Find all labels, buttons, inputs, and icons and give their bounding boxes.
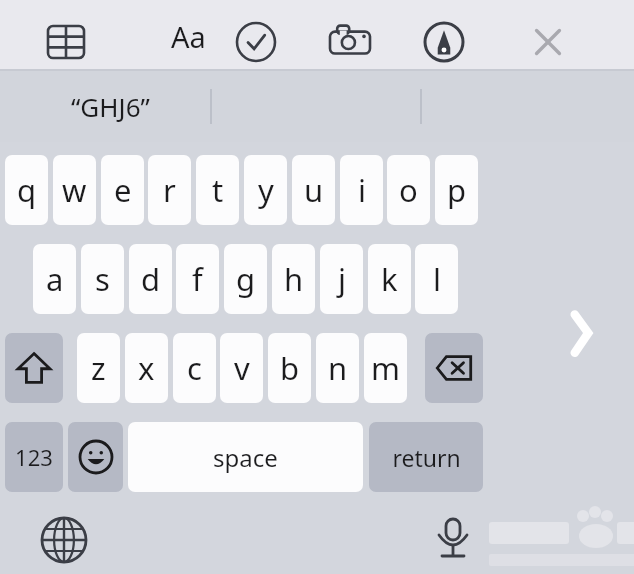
- button[interactable]: n: [316, 333, 359, 403]
- staticText: return: [392, 442, 461, 473]
- button[interactable]: q: [5, 155, 48, 225]
- button[interactable]: g: [224, 244, 267, 314]
- button[interactable]: u: [292, 155, 335, 225]
- button[interactable]: 123: [5, 422, 63, 492]
- button[interactable]: o: [387, 155, 430, 225]
- staticText: y: [258, 169, 274, 211]
- staticText: p: [447, 169, 467, 211]
- staticText: v: [234, 347, 250, 389]
- button[interactable]: t: [196, 155, 239, 225]
- button[interactable]: v: [220, 333, 263, 403]
- button[interactable]: d: [129, 244, 172, 314]
- button[interactable]: s: [81, 244, 124, 314]
- staticText: u: [304, 169, 324, 211]
- staticText: z: [91, 347, 106, 389]
- staticText: b: [280, 347, 300, 389]
- button[interactable]: Table: [40, 16, 92, 68]
- button[interactable]: b: [268, 333, 311, 403]
- button[interactable]: p: [435, 155, 478, 225]
- staticText: r: [163, 169, 176, 211]
- staticText: Aa: [171, 17, 206, 55]
- button[interactable]: Close: [522, 16, 574, 68]
- staticText: g: [236, 258, 256, 300]
- button[interactable]: f: [176, 244, 219, 314]
- staticText: t: [212, 169, 224, 211]
- button[interactable]: w: [53, 155, 96, 225]
- staticText: e: [114, 169, 132, 211]
- staticText: j: [338, 258, 346, 300]
- button[interactable]: Dictate: [428, 512, 478, 562]
- button[interactable]: return: [369, 422, 483, 492]
- button[interactable]: a: [33, 244, 76, 314]
- button[interactable]: Next: [556, 300, 608, 366]
- button[interactable]: y: [244, 155, 287, 225]
- button[interactable]: h: [272, 244, 315, 314]
- staticText: w: [62, 169, 87, 211]
- staticText: d: [141, 258, 161, 300]
- staticText: n: [328, 347, 348, 389]
- staticText: space: [213, 441, 278, 474]
- button[interactable]: Key: [68, 422, 123, 492]
- button[interactable]: Change keyboard language: [38, 514, 90, 566]
- button[interactable]: Aa: [158, 17, 218, 55]
- button[interactable]: Camera: [324, 16, 376, 68]
- button[interactable]: m: [364, 333, 407, 403]
- button[interactable]: x: [125, 333, 168, 403]
- staticText: i: [358, 169, 366, 211]
- button[interactable]: k: [368, 244, 411, 314]
- button[interactable]: c: [173, 333, 216, 403]
- staticText: k: [381, 258, 398, 300]
- staticText: s: [95, 258, 110, 300]
- staticText: h: [284, 258, 304, 300]
- button[interactable]: i: [340, 155, 383, 225]
- button[interactable]: “GHJ6”: [20, 71, 200, 142]
- button[interactable]: j: [320, 244, 363, 314]
- button[interactable]: Mark complete: [230, 16, 282, 68]
- button[interactable]: z: [77, 333, 120, 403]
- staticText: f: [192, 258, 203, 300]
- button[interactable]: r: [148, 155, 191, 225]
- button[interactable]: space: [128, 422, 363, 492]
- button[interactable]: Markup: [418, 16, 470, 68]
- button[interactable]: e: [101, 155, 144, 225]
- staticText: m: [371, 347, 400, 389]
- staticText: o: [399, 169, 418, 211]
- button[interactable]: l: [415, 244, 458, 314]
- staticText: l: [433, 258, 441, 300]
- staticText: c: [187, 347, 202, 389]
- staticText: “GHJ6”: [71, 89, 150, 124]
- staticText: 123: [15, 442, 53, 472]
- button[interactable]: Key: [5, 333, 63, 403]
- button[interactable]: Key: [425, 333, 483, 403]
- staticText: q: [17, 169, 37, 211]
- staticText: x: [138, 347, 155, 389]
- staticText: a: [46, 258, 64, 300]
